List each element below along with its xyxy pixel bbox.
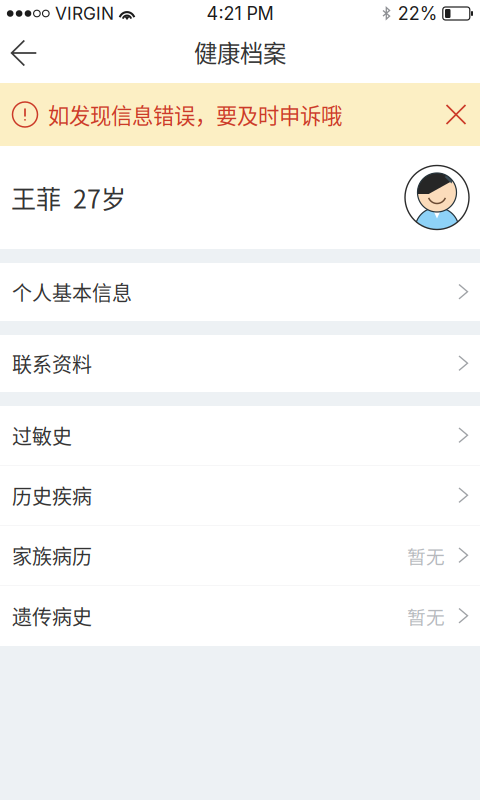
button[interactable]: 过敏史 [0, 406, 480, 466]
button[interactable]: 个人基本信息 [0, 263, 480, 321]
button[interactable]: Back [1, 32, 47, 78]
staticText: 过敏史 [12, 421, 72, 450]
button[interactable]: 家族病历 [0, 526, 480, 586]
staticText: 暂无 [407, 542, 445, 569]
staticText: 22% [398, 3, 438, 24]
button[interactable]: 王菲 27岁 [0, 146, 480, 249]
staticText: 健康档案 [194, 35, 286, 69]
staticText: 4:21 PM [206, 3, 273, 24]
button[interactable]: Dismiss warning [434, 92, 478, 136]
staticText: 个人基本信息 [12, 277, 132, 306]
staticText: 历史疾病 [12, 481, 92, 510]
button[interactable]: 联系资料 [0, 335, 480, 392]
staticText: 暂无 [407, 602, 445, 629]
staticText: 王菲 27岁 [11, 179, 126, 216]
staticText: 如发现信息错误，要及时申诉哦 [48, 99, 342, 130]
staticText: 家族病历 [12, 541, 92, 570]
staticText: VIRGIN [55, 3, 114, 24]
staticText: 联系资料 [12, 349, 92, 378]
button[interactable]: 遗传病史 [0, 586, 480, 646]
button[interactable]: 历史疾病 [0, 466, 480, 526]
staticText: 遗传病史 [12, 601, 92, 630]
